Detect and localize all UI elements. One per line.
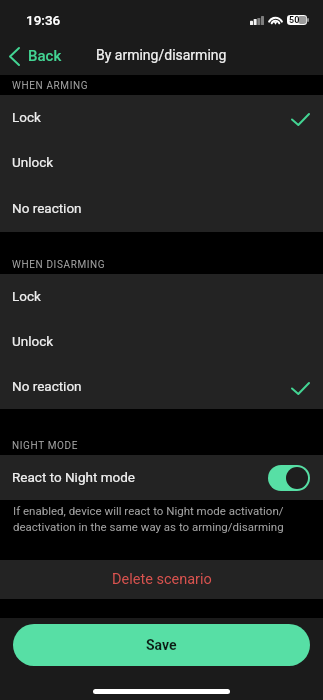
staticText: By arming/disarming xyxy=(96,47,227,63)
staticText: WHEN DISARMING xyxy=(12,259,106,271)
other: Selected xyxy=(291,113,310,126)
staticText: React to Night mode xyxy=(12,469,135,485)
button[interactable]: No reaction xyxy=(0,364,323,409)
button[interactable]: React to Night mode xyxy=(0,455,323,500)
staticText: Lock xyxy=(12,288,41,304)
button[interactable]: Back xyxy=(0,36,72,75)
button[interactable]: Unlock xyxy=(0,319,323,364)
staticText: Lock xyxy=(12,109,41,125)
staticText: NIGHT MODE xyxy=(12,440,78,452)
button[interactable]: Delete scenario xyxy=(0,560,323,599)
staticText: If enabled, device will react to Night m… xyxy=(13,504,284,534)
staticText: Delete scenario xyxy=(112,571,212,588)
staticText: No reaction xyxy=(12,200,82,216)
staticText: No reaction xyxy=(12,378,82,394)
button[interactable]: Lock xyxy=(0,274,323,319)
button[interactable]: Save xyxy=(13,624,310,666)
other: React to Night mode toggle xyxy=(268,465,310,491)
staticText: 50 xyxy=(289,15,300,25)
staticText: Unlock xyxy=(12,333,54,349)
staticText: Unlock xyxy=(12,154,54,170)
staticText: Back xyxy=(28,47,62,65)
button[interactable]: No reaction xyxy=(0,185,323,232)
staticText: Save xyxy=(146,637,177,653)
button[interactable]: Unlock xyxy=(0,140,323,185)
other: Selected xyxy=(291,382,310,395)
button[interactable]: Lock xyxy=(0,95,323,140)
staticText: 19:36 xyxy=(26,12,61,28)
staticText: WHEN ARMING xyxy=(12,80,89,92)
